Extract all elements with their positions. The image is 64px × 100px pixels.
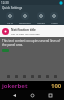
staticText: Flash [51, 21, 58, 24]
staticText: 100 [51, 82, 62, 90]
button[interactable]: jokerbet [2, 81, 62, 90]
button[interactable] [2, 49, 9, 52]
staticText: Notification title [11, 28, 36, 32]
button[interactable]: Flash [50, 12, 58, 24]
staticText: Tap to view the message [11, 32, 40, 35]
staticText: jokerbet [2, 82, 28, 90]
button[interactable]: Rotate [37, 12, 45, 24]
staticText: Rotate [37, 21, 45, 24]
button[interactable]: Home [28, 91, 36, 99]
button[interactable]: Back [10, 91, 18, 99]
staticText: Quick Settings [2, 6, 23, 10]
staticText: Bluetooth [19, 21, 31, 24]
staticText: 12:30 [1, 1, 9, 5]
button[interactable]: Notification title [0, 25, 64, 37]
button[interactable]: Wi-Fi [6, 12, 14, 24]
button[interactable]: Bluetooth [19, 12, 31, 24]
staticText: This text content occupies several lines… [2, 39, 62, 47]
staticText: Wi-Fi [7, 21, 13, 24]
button[interactable]: Recents [46, 91, 54, 99]
